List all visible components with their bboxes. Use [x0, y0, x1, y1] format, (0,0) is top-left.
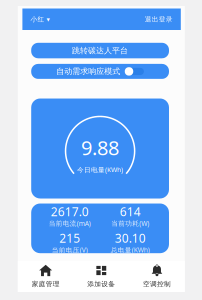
staticText: 家庭管理: [32, 280, 60, 288]
staticText: 30.10: [115, 230, 146, 246]
staticText: 空调控制: [143, 280, 171, 288]
staticText: 退出登录: [145, 15, 173, 23]
staticText: 614: [120, 203, 141, 219]
staticText: 9.88: [81, 134, 119, 161]
button[interactable]: 小红 ▾: [27, 8, 52, 30]
button[interactable]: 退出登录: [142, 8, 176, 30]
staticText: 添加设备: [87, 280, 115, 288]
staticText: 小红 ▾: [30, 15, 49, 23]
button[interactable]: 自动需求响应模式: [31, 64, 169, 79]
staticText: 总电量(KWh): [111, 246, 150, 254]
staticText: 跳转碳达人平台: [72, 46, 128, 55]
button[interactable]: 空调控制: [129, 261, 185, 292]
button[interactable]: 跳转碳达人平台: [31, 43, 169, 58]
staticText: 2617.0: [51, 203, 89, 219]
staticText: 215: [59, 230, 80, 246]
staticText: 自动需求响应模式: [56, 66, 120, 76]
staticText: 当前电压(V): [52, 246, 88, 254]
button[interactable]: 家庭管理: [18, 261, 73, 292]
staticText: 当前电流(mA): [49, 219, 91, 228]
staticText: 今日电量(KWh): [77, 165, 123, 174]
button[interactable]: 添加设备: [73, 261, 129, 292]
staticText: 当前功耗(W): [111, 219, 149, 228]
